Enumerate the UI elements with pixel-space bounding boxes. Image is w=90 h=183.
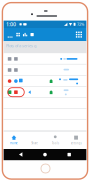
button[interactable]: Recent apps <box>62 149 76 160</box>
button[interactable]: Home <box>4 131 24 149</box>
button[interactable]: Line style <box>29 28 36 41</box>
staticText: Tools <box>52 141 59 145</box>
button[interactable]: Chart <box>22 28 29 41</box>
staticText: 72% <box>77 22 84 27</box>
button[interactable]: Back <box>14 149 28 160</box>
button[interactable]: Home <box>38 149 52 160</box>
button[interactable]: Data table <box>15 28 22 41</box>
button[interactable]: Settings <box>66 131 86 149</box>
button[interactable]: Layout <box>73 28 84 41</box>
button[interactable]: Formula <box>6 28 15 41</box>
button[interactable]: Share <box>24 131 45 149</box>
button[interactable]: Tools <box>45 131 66 149</box>
staticText: Settings <box>70 141 81 145</box>
staticText: Plots of a series g <box>6 43 36 48</box>
staticText: Home <box>10 141 18 145</box>
staticText: Share <box>31 141 38 145</box>
staticText: 1:00 <box>6 21 16 28</box>
